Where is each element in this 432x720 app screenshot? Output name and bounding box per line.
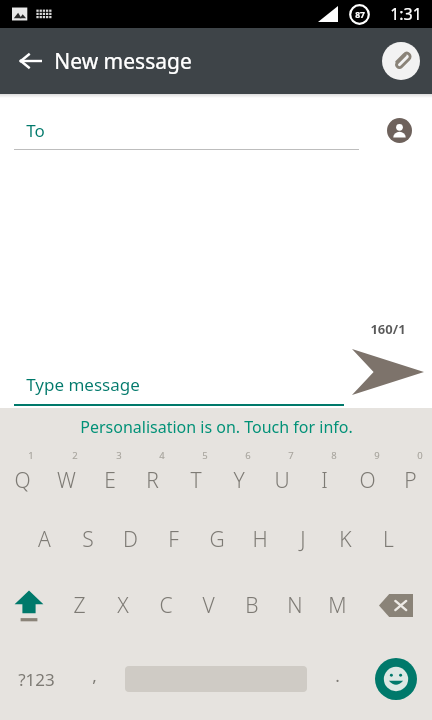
staticText: R xyxy=(146,466,159,495)
button[interactable]: Shift xyxy=(0,572,57,638)
button[interactable]: G xyxy=(195,506,238,572)
staticText: I xyxy=(321,466,328,495)
button[interactable]: H xyxy=(238,506,281,572)
staticText: To xyxy=(26,119,45,142)
button[interactable]: J xyxy=(281,506,324,572)
button[interactable]: Backspace xyxy=(359,572,432,638)
button[interactable]: L xyxy=(367,506,410,572)
staticText: . xyxy=(335,664,340,687)
button[interactable]: M xyxy=(316,572,359,638)
button[interactable]: 2 xyxy=(44,446,88,506)
staticText: H xyxy=(252,525,268,554)
button[interactable]: Space xyxy=(117,638,315,720)
staticText: Z xyxy=(73,591,86,620)
staticText: S xyxy=(82,525,94,554)
button[interactable]: 6 xyxy=(217,446,260,506)
button[interactable]: Pick contact xyxy=(384,115,414,145)
staticText: , xyxy=(92,664,97,687)
button[interactable]: 3 xyxy=(88,446,131,506)
button[interactable]: 8 xyxy=(303,446,346,506)
button[interactable]: 9 xyxy=(346,446,389,506)
button[interactable]: C xyxy=(144,572,187,638)
staticText: 7 xyxy=(288,449,294,462)
button[interactable]: Back xyxy=(8,39,52,83)
staticText: Y xyxy=(233,466,245,495)
staticText: D xyxy=(123,525,138,554)
staticText: F xyxy=(168,525,179,554)
staticText: 4 xyxy=(159,449,165,462)
button[interactable]: A xyxy=(23,506,66,572)
staticText: G xyxy=(209,525,225,554)
staticText: B xyxy=(245,591,259,620)
staticText: E xyxy=(104,466,116,495)
staticText: V xyxy=(202,591,215,620)
staticText: Personalisation is on. Touch for info. xyxy=(80,416,353,438)
staticText: C xyxy=(159,591,173,620)
button[interactable]: ?123 xyxy=(0,638,72,720)
staticText: W xyxy=(57,466,76,495)
staticText: 1:31 xyxy=(390,3,422,25)
button[interactable]: Z xyxy=(57,572,101,638)
staticText: ?123 xyxy=(18,668,55,691)
button[interactable]: X xyxy=(101,572,144,638)
staticText: O xyxy=(359,466,376,495)
staticText: New message xyxy=(54,47,192,76)
button[interactable]: Personalisation is on. Touch for info. xyxy=(0,408,432,446)
staticText: L xyxy=(383,525,394,554)
button[interactable]: , xyxy=(72,638,117,720)
button[interactable]: 0 xyxy=(389,446,432,506)
staticText: U xyxy=(274,466,290,495)
staticText: 2 xyxy=(72,449,78,462)
button[interactable]: Send xyxy=(344,350,432,406)
staticText: 0 xyxy=(417,449,423,462)
staticText: Q xyxy=(14,466,31,495)
button[interactable]: 5 xyxy=(174,446,217,506)
staticText: 5 xyxy=(202,449,208,462)
staticText: X xyxy=(117,591,129,620)
staticText: J xyxy=(300,525,306,554)
button[interactable]: 1 xyxy=(0,446,44,506)
button[interactable]: B xyxy=(230,572,273,638)
staticText: 9 xyxy=(374,449,380,462)
button[interactable]: N xyxy=(273,572,316,638)
staticText: Type message xyxy=(26,373,140,396)
button[interactable]: To xyxy=(14,119,359,150)
button[interactable]: Attach xyxy=(382,42,420,80)
staticText: A xyxy=(38,525,51,554)
button[interactable]: S xyxy=(66,506,109,572)
staticText: 8 xyxy=(331,449,337,462)
button[interactable]: F xyxy=(152,506,195,572)
button[interactable]: K xyxy=(324,506,367,572)
button[interactable]: 4 xyxy=(131,446,174,506)
staticText: 3 xyxy=(116,449,122,462)
button[interactable]: Type message xyxy=(14,373,344,406)
staticText: K xyxy=(339,525,352,554)
staticText: 87 xyxy=(355,9,365,21)
staticText: T xyxy=(190,466,202,495)
staticText: 1 xyxy=(28,449,34,462)
button[interactable]: D xyxy=(109,506,152,572)
staticText: N xyxy=(287,591,303,620)
staticText: 160/1 xyxy=(370,320,406,338)
staticText: M xyxy=(328,591,347,620)
staticText: P xyxy=(404,466,417,495)
button[interactable]: V xyxy=(187,572,230,638)
button[interactable]: 7 xyxy=(260,446,303,506)
staticText: 6 xyxy=(245,449,251,462)
button[interactable]: Emoji xyxy=(360,638,432,720)
